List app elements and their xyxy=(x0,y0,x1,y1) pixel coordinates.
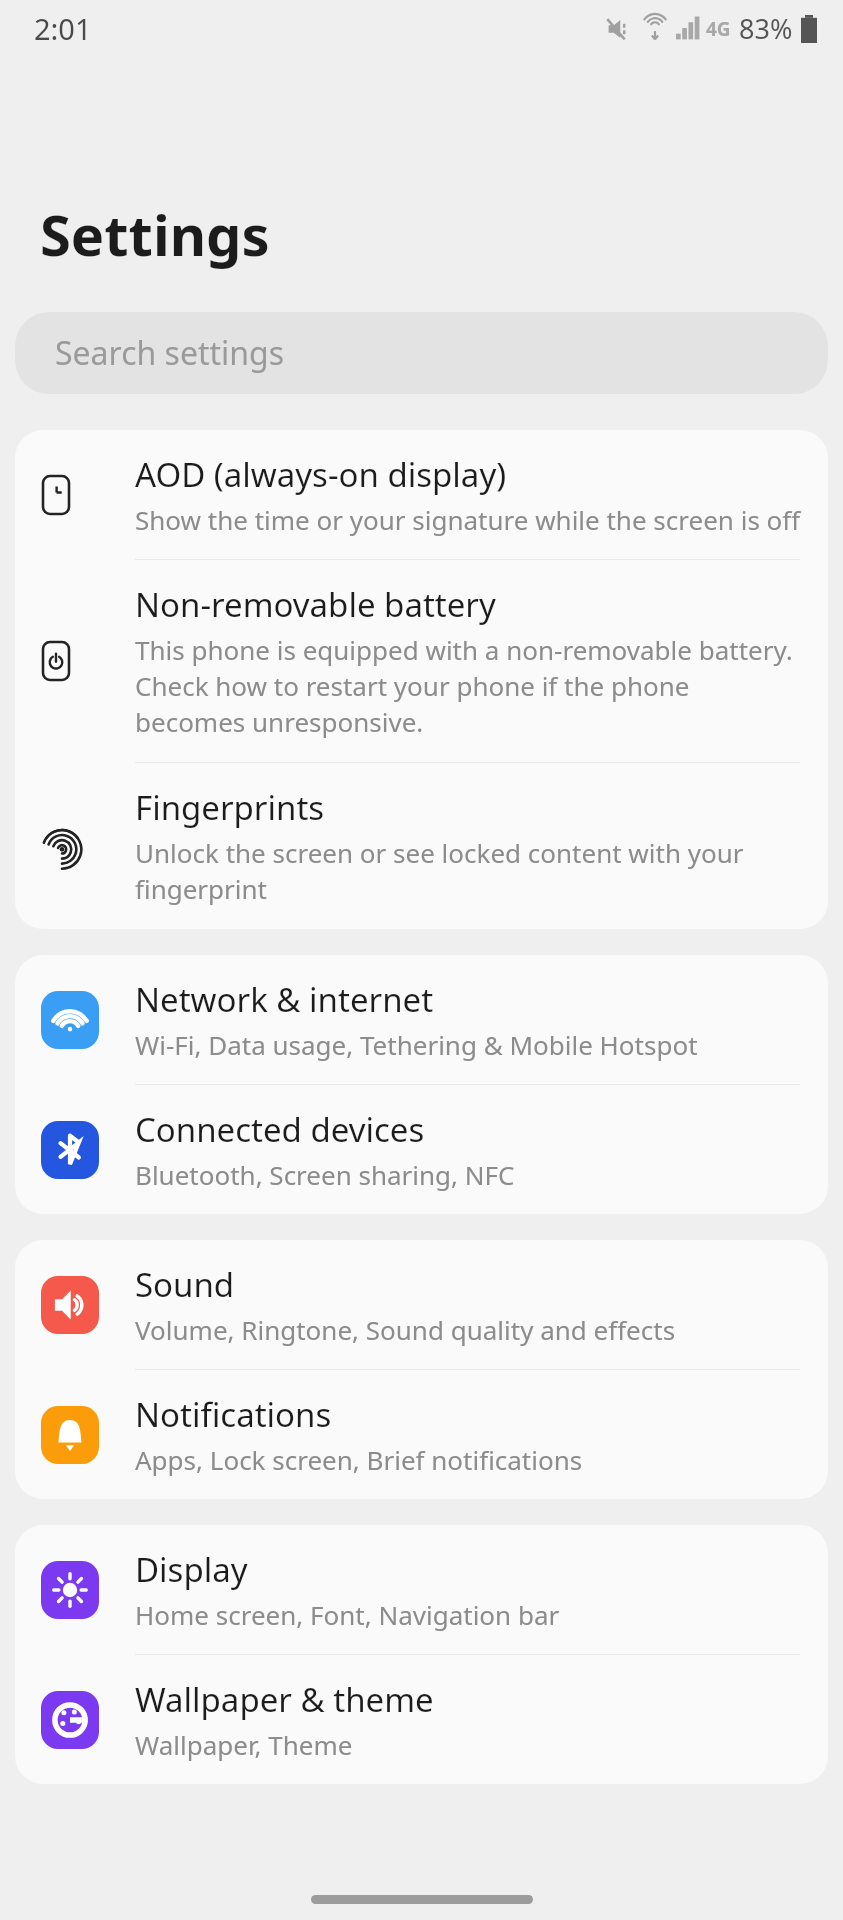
staticText: Wallpaper & theme xyxy=(135,1677,434,1722)
staticText: 2:01 xyxy=(34,9,92,48)
staticText: Sound xyxy=(135,1262,235,1307)
staticText: Bluetooth, Screen sharing, NFC xyxy=(135,1157,515,1192)
other: Fingerprints xyxy=(41,825,83,867)
staticText: Search settings xyxy=(55,331,285,375)
other: Always on display xyxy=(41,474,71,516)
staticText: Wi-Fi, Data usage, Tethering & Mobile Ho… xyxy=(135,1027,698,1062)
button[interactable]: Non-removable battery xyxy=(15,560,828,762)
button[interactable]: Wallpaper & theme xyxy=(15,1655,828,1784)
button[interactable]: Always on display xyxy=(15,430,828,559)
staticText: Settings xyxy=(40,196,270,272)
button[interactable]: Search settings xyxy=(15,312,828,394)
staticText: Volume, Ringtone, Sound quality and effe… xyxy=(135,1312,676,1347)
staticText: Notifications xyxy=(135,1392,332,1437)
staticText: Network & internet xyxy=(135,977,434,1022)
staticText: 83% xyxy=(739,10,793,47)
staticText: Apps, Lock screen, Brief notifications xyxy=(135,1442,583,1477)
staticText: Display xyxy=(135,1547,248,1592)
staticText: Fingerprints xyxy=(135,785,325,830)
button[interactable]: Network & internet xyxy=(15,955,828,1084)
button[interactable]: Display xyxy=(15,1525,828,1654)
staticText: Non-removable battery xyxy=(135,582,496,627)
staticText: 4G xyxy=(706,16,731,42)
button[interactable]: Notifications xyxy=(15,1370,828,1499)
staticText: Connected devices xyxy=(135,1107,425,1152)
staticText: Show the time or your signature while th… xyxy=(135,502,801,537)
staticText: AOD (always-on display) xyxy=(135,452,507,497)
other: Non-removable battery xyxy=(41,640,71,682)
button[interactable]: Connected devices xyxy=(15,1085,828,1214)
staticText: Wallpaper, Theme xyxy=(135,1727,353,1762)
staticText: Home screen, Font, Navigation bar xyxy=(135,1597,560,1632)
button[interactable]: Fingerprints xyxy=(15,763,828,929)
staticText: Unlock the screen or see locked content … xyxy=(135,835,802,907)
button[interactable]: Sound xyxy=(15,1240,828,1369)
staticText: This phone is equipped with a non-remova… xyxy=(135,632,802,740)
